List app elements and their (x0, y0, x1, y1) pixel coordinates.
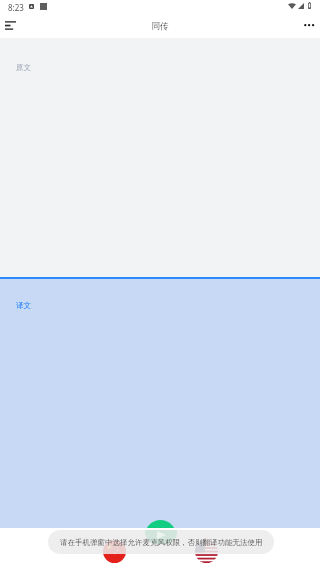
button[interactable]: More options (298, 16, 320, 38)
staticText: 8:23 (8, 2, 24, 13)
staticText: 原文 (16, 63, 31, 72)
button[interactable]: Start recording (145, 520, 176, 551)
staticText: 请在手机弹窗中选择允许麦克风权限，否则翻译功能无法使用 (60, 538, 263, 547)
button[interactable]: Source language: Chinese (103, 540, 126, 563)
button[interactable]: 译文 (0, 279, 320, 528)
button[interactable]: Target language: English (195, 540, 218, 563)
staticText: 同传 (0, 21, 320, 32)
staticText: 译文 (16, 301, 31, 310)
button[interactable]: Menu (0, 16, 22, 38)
